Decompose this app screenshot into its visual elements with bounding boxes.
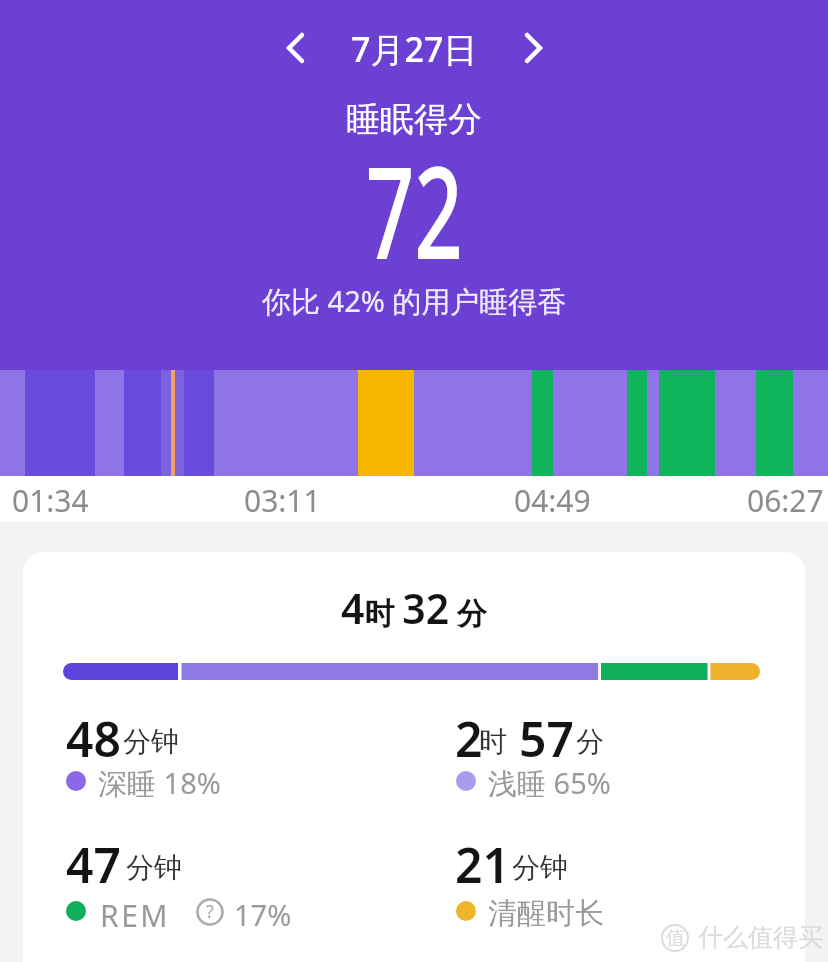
staticText: 17% bbox=[234, 895, 292, 934]
staticText: REM bbox=[100, 895, 171, 936]
staticText: 21 bbox=[455, 832, 510, 897]
staticText: 分钟 bbox=[512, 850, 568, 885]
staticText: 47 bbox=[66, 832, 121, 897]
button[interactable]: 7月27日 bbox=[0, 0, 828, 44]
staticText: ? bbox=[206, 899, 214, 924]
staticText: 01:34 bbox=[12, 480, 89, 518]
staticText: 你比 42% 的用户睡得香 bbox=[262, 281, 567, 321]
staticText: 72 bbox=[366, 122, 463, 296]
staticText: 7月27日 bbox=[351, 26, 478, 70]
staticText: 分钟 bbox=[126, 850, 182, 885]
staticText: 分钟 bbox=[123, 724, 179, 759]
staticText: 4时 32 分 bbox=[341, 580, 487, 628]
staticText: 2 bbox=[455, 706, 483, 771]
button[interactable]: ? bbox=[195, 897, 224, 926]
staticText: 04:49 bbox=[514, 480, 591, 518]
staticText: 48 bbox=[66, 706, 121, 771]
staticText: 浅睡 65% bbox=[488, 763, 611, 803]
staticText: 06:27 bbox=[747, 480, 824, 518]
button[interactable] bbox=[511, 26, 555, 70]
staticText: 值 bbox=[666, 926, 685, 950]
staticText: 57 bbox=[519, 706, 574, 771]
staticText: 深睡 18% bbox=[98, 763, 221, 803]
staticText: 清醒时长 bbox=[488, 895, 604, 932]
button[interactable] bbox=[273, 26, 317, 70]
staticText: 时 bbox=[479, 724, 507, 759]
staticText: 分 bbox=[576, 724, 604, 759]
staticText: 睡眠得分 bbox=[346, 98, 482, 138]
staticText: 什么值得买 bbox=[698, 922, 823, 953]
staticText: 03:11 bbox=[244, 480, 321, 518]
